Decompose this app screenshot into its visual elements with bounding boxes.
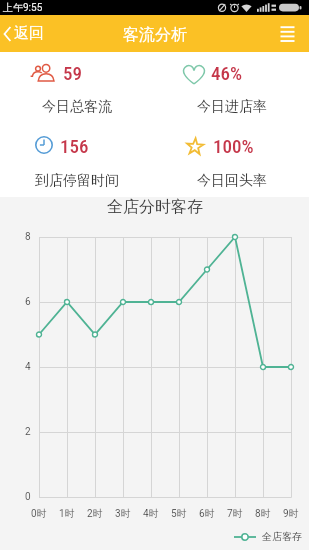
staticText: 今日回头率 (197, 172, 267, 190)
button[interactable]: 59 (30, 62, 82, 88)
staticText: 0 (25, 491, 31, 503)
staticText: 到店停留时间 (35, 172, 119, 190)
staticText: 8时 (255, 507, 271, 520)
staticText: 7时 (227, 507, 243, 520)
staticText: 2时 (87, 507, 103, 520)
staticText: 156 (60, 135, 89, 157)
staticText: 5时 (171, 507, 187, 520)
staticText: 4 (25, 361, 31, 373)
staticText: 2 (25, 426, 31, 438)
button[interactable]: 156 (35, 135, 89, 161)
button[interactable] (280, 15, 309, 52)
staticText: 46% (211, 62, 243, 84)
button[interactable]: 返回 (0, 15, 44, 52)
button[interactable]: 46% (182, 62, 243, 88)
staticText: 全店客存 (262, 530, 302, 543)
staticText: 59 (63, 62, 82, 84)
staticText: 6时 (199, 507, 215, 520)
staticText: 今日进店率 (197, 98, 267, 116)
staticText: 今日总客流 (42, 98, 112, 116)
staticText: 返回 (14, 24, 44, 43)
staticText: 9时 (283, 507, 299, 520)
staticText: 4时 (143, 507, 159, 520)
staticText: 全店分时客存 (107, 197, 203, 217)
staticText: 100% (213, 135, 254, 157)
staticText: 8 (25, 231, 31, 243)
staticText: 3时 (115, 507, 131, 520)
staticText: 6 (25, 296, 31, 308)
button[interactable]: 100% (186, 135, 254, 161)
staticText: 上午9:55 (3, 1, 43, 14)
staticText: 1时 (59, 507, 75, 520)
staticText: 客流分析 (123, 25, 187, 45)
staticText: 0时 (31, 507, 47, 520)
